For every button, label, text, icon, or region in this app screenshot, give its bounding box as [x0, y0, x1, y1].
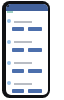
- button[interactable]: [12, 48, 24, 52]
- button[interactable]: [28, 27, 42, 31]
- button[interactable]: [12, 27, 24, 31]
- button[interactable]: Item icon: [7, 61, 11, 65]
- button[interactable]: Item icon: [7, 19, 11, 23]
- button[interactable]: [28, 89, 42, 93]
- button[interactable]: [6, 4, 48, 11]
- button[interactable]: [12, 69, 24, 73]
- button[interactable]: Item icon: [7, 81, 11, 85]
- button[interactable]: Item icon: [7, 40, 11, 44]
- button[interactable]: [12, 89, 24, 93]
- button[interactable]: [28, 69, 42, 73]
- button[interactable]: [28, 48, 42, 52]
